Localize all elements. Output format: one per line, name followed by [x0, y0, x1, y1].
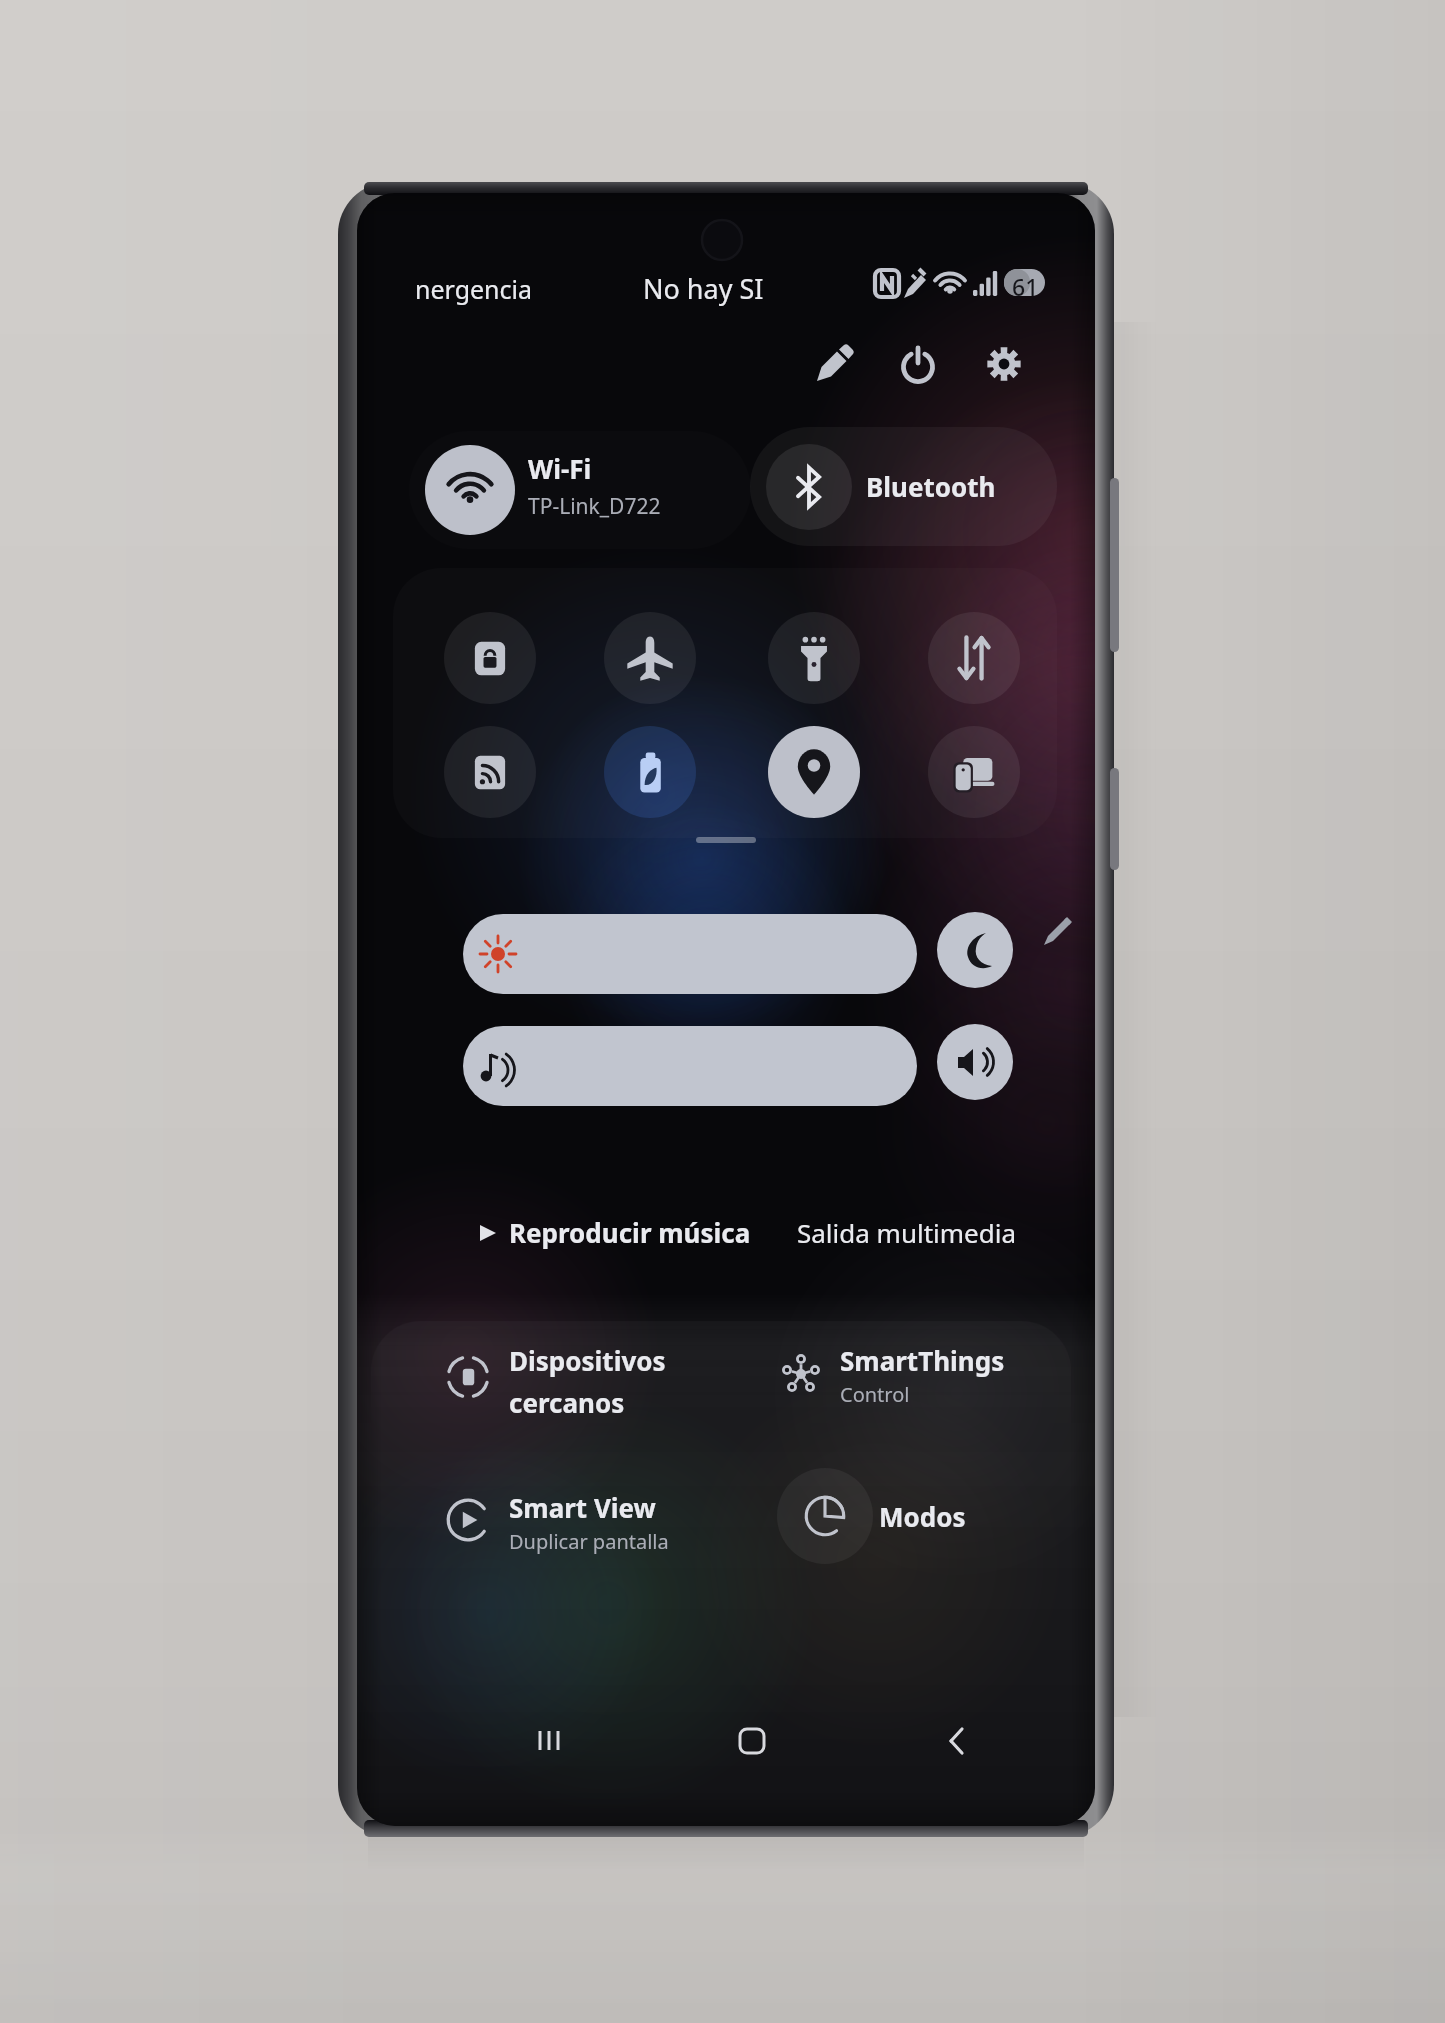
- button[interactable]: S Pen: [1033, 907, 1083, 957]
- button[interactable]: Bluetooth: [750, 427, 1057, 546]
- staticText: Duplicar pantalla: [509, 1528, 669, 1555]
- button[interactable]: Power saving: [604, 726, 696, 818]
- button[interactable]: Settings: [976, 336, 1032, 392]
- staticText: Reproducir música: [509, 1215, 751, 1250]
- button[interactable]: Volume: [463, 1026, 917, 1106]
- staticText: cercanos: [509, 1385, 625, 1420]
- staticText: Wi-Fi: [528, 451, 592, 486]
- button[interactable]: Brightness: [463, 914, 917, 994]
- button[interactable]: Lock network: [444, 612, 536, 704]
- button[interactable]: Salida multimedia: [797, 1215, 1017, 1250]
- button[interactable]: Link to Windows: [928, 726, 1020, 818]
- staticText: 61: [1012, 271, 1039, 302]
- button[interactable]: Reproducir música: [475, 1215, 751, 1250]
- button[interactable]: Mobile data: [928, 612, 1020, 704]
- staticText: No hay SI: [643, 270, 764, 307]
- button[interactable]: SmartThings: [753, 1325, 1053, 1421]
- button[interactable]: Edit: [806, 336, 862, 392]
- button[interactable]: Flashlight: [768, 612, 860, 704]
- button[interactable]: Nearby devices: [420, 1329, 720, 1425]
- button[interactable]: Screen cast: [444, 726, 536, 818]
- button[interactable]: Modes: [777, 1468, 1077, 1564]
- button[interactable]: Location: [768, 726, 860, 818]
- staticText: Smart View: [509, 1490, 656, 1525]
- staticText: SmartThings: [840, 1343, 1005, 1378]
- staticText: Salida multimedia: [797, 1215, 1017, 1250]
- button[interactable]: Wi-Fi: [409, 431, 751, 549]
- staticText: Bluetooth: [866, 469, 996, 504]
- button[interactable]: Home: [704, 1692, 800, 1788]
- staticText: TP-Link_D722: [528, 492, 661, 521]
- staticText: nergencia: [415, 272, 533, 306]
- staticText: Dispositivos: [509, 1343, 666, 1378]
- staticText: Control: [840, 1381, 910, 1408]
- button[interactable]: Smart View: [420, 1472, 720, 1568]
- button[interactable]: Do not disturb: [937, 912, 1013, 988]
- button[interactable]: Power: [890, 336, 946, 392]
- button[interactable]: Recents: [501, 1692, 597, 1788]
- staticText: Modos: [879, 1499, 966, 1534]
- button[interactable]: Airplane mode: [604, 612, 696, 704]
- button[interactable]: Back: [909, 1692, 1005, 1788]
- button[interactable]: Sound settings: [937, 1024, 1013, 1100]
